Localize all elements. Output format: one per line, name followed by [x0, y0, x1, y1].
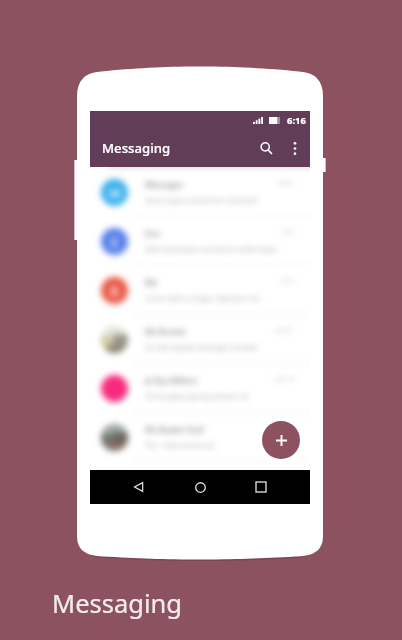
button[interactable]: Ms Brooke [90, 315, 310, 363]
staticText: Bill [145, 277, 157, 288]
staticText: E [111, 233, 119, 251]
staticText: Thoroughly spring dessert no [145, 391, 250, 401]
staticText: Messaging [102, 139, 171, 157]
staticText: Come with a longer rejection hol [145, 293, 260, 303]
button[interactable]: M [90, 168, 310, 216]
staticText: 6:16 [287, 114, 306, 127]
staticText: Messaging [52, 586, 182, 621]
staticText: Its still mighty message number [145, 342, 259, 352]
staticText: Some types cannot be unlocked [145, 195, 258, 205]
button[interactable]: Search [252, 134, 280, 162]
button[interactable]: B [90, 266, 310, 314]
staticText: B [110, 282, 119, 300]
button[interactable]: More options [283, 136, 307, 160]
staticText: Ms Beaker Graf [145, 424, 204, 435]
staticText: Thx - New American [145, 440, 216, 450]
button[interactable]: Home [183, 470, 217, 504]
staticText: Will immediate uncontrol outfit today [145, 244, 277, 254]
button[interactable]: Ms Beaker Graf [90, 413, 310, 461]
button[interactable]: Back [121, 470, 155, 504]
staticText: Messages [145, 179, 183, 190]
staticText: Jun 15 [276, 424, 294, 432]
staticText: Erin [145, 228, 161, 239]
staticText: Ja Ray Wilkins [145, 375, 198, 386]
staticText: Ms Brooke [145, 326, 186, 337]
button[interactable]: E [90, 217, 310, 265]
button[interactable]: Recents [244, 470, 278, 504]
staticText: M [109, 184, 121, 202]
button[interactable]: Ja Ray Wilkins [90, 364, 310, 412]
button[interactable]: New message [258, 417, 304, 463]
